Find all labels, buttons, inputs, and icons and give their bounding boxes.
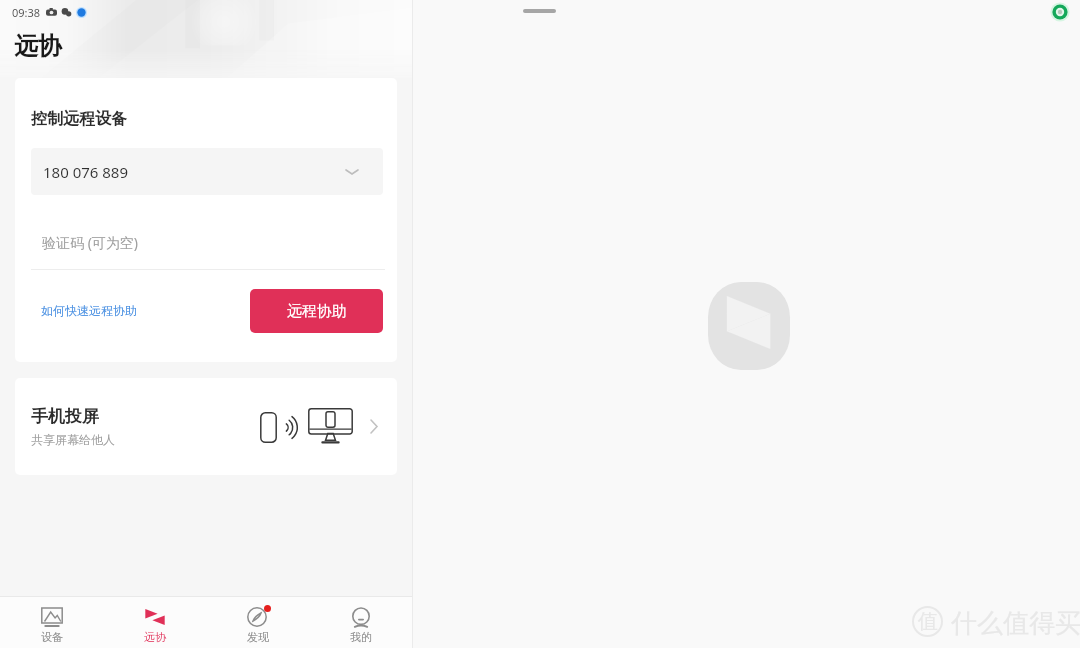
button[interactable]: 我的 <box>309 607 412 648</box>
button[interactable]: Screen recording <box>1050 2 1070 22</box>
button[interactable]: 远程协助 <box>250 289 383 333</box>
staticText: 设备 <box>41 630 63 644</box>
button[interactable]: 验证码 (可为空) <box>31 219 385 270</box>
staticText: 我的 <box>350 630 372 644</box>
staticText: 控制远程设备 <box>31 109 127 129</box>
staticText: 验证码 (可为空) <box>42 233 139 252</box>
staticText: 180 076 889 <box>43 162 129 182</box>
staticText: 09:38 <box>12 5 41 20</box>
staticText: 手机投屏 <box>31 406 99 427</box>
button[interactable]: 手机投屏 <box>15 378 397 475</box>
staticText: 远程协助 <box>287 302 347 321</box>
staticText: 值 <box>918 609 938 634</box>
staticText: 发现 <box>247 630 269 644</box>
staticText: 远协 <box>14 31 62 61</box>
staticText: 如何快速远程协助 <box>41 303 137 318</box>
button[interactable]: 设备 <box>0 607 103 648</box>
button[interactable]: 发现 <box>206 607 309 648</box>
staticText: 共享屏幕给他人 <box>31 432 115 447</box>
button[interactable]: Drag handle <box>523 9 556 13</box>
staticText: 远协 <box>144 630 166 644</box>
staticText: 什么值得买 <box>951 607 1080 640</box>
button[interactable]: 如何快速远程协助 <box>41 303 137 318</box>
button[interactable]: 180 076 889 <box>31 148 383 195</box>
button[interactable]: 远协 <box>103 607 206 648</box>
